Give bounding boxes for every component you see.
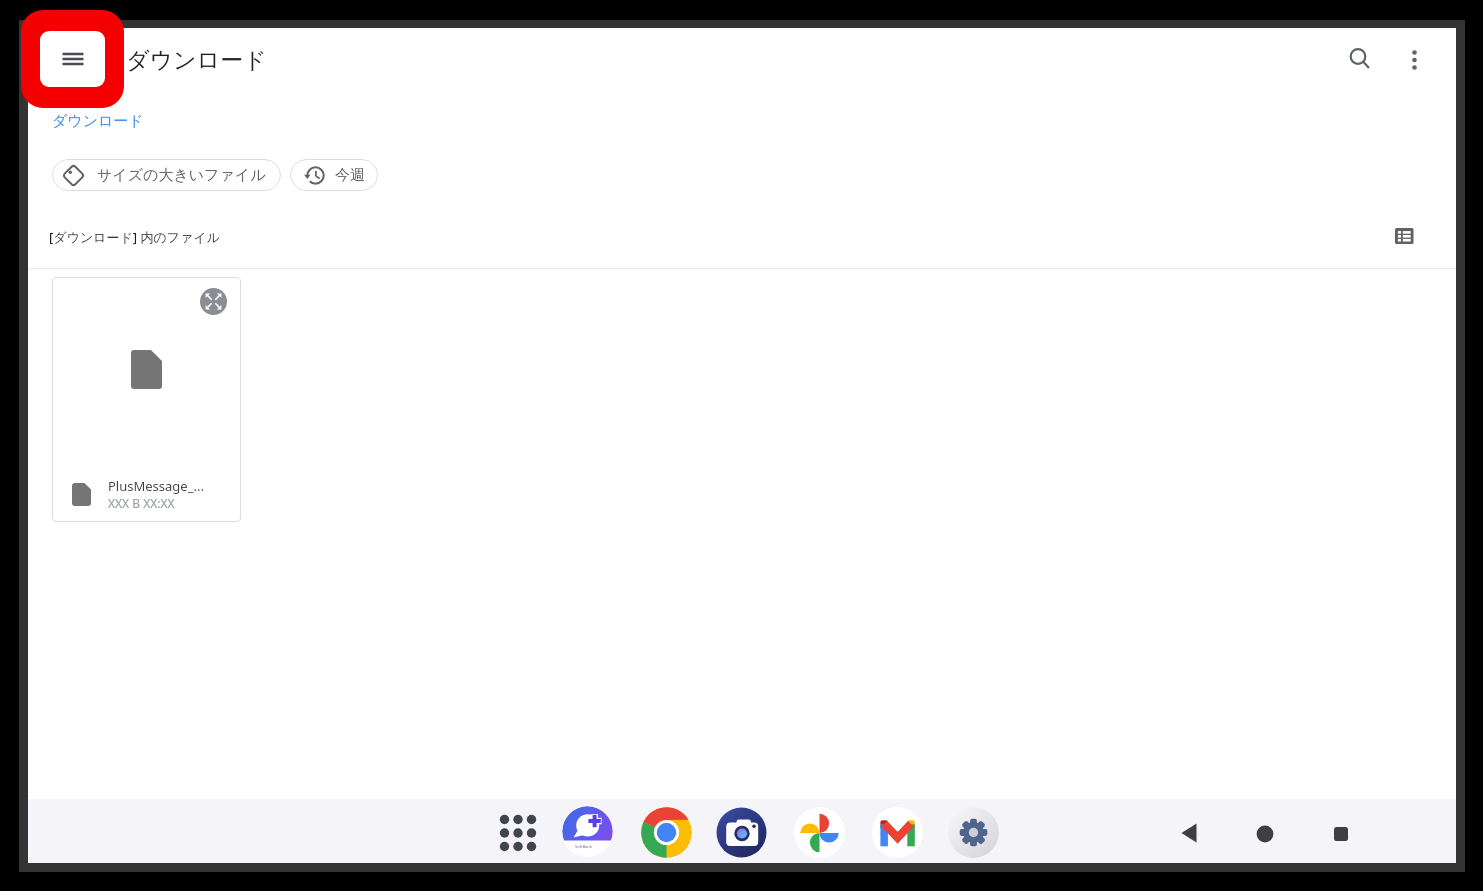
button[interactable]: [948, 807, 999, 858]
staticText: XXX B XX:XX: [108, 495, 175, 511]
button[interactable]: SoftBank: [562, 806, 613, 857]
button[interactable]: [200, 288, 227, 315]
button[interactable]: [716, 807, 767, 858]
button[interactable]: [1241, 809, 1289, 857]
button[interactable]: [1384, 218, 1424, 258]
button[interactable]: [40, 31, 105, 87]
staticText: サイズの大きいファイル: [97, 166, 266, 185]
button[interactable]: [1317, 809, 1365, 857]
button[interactable]: サイズの大きいファイル: [52, 159, 281, 191]
button[interactable]: [1338, 36, 1380, 78]
button[interactable]: [494, 809, 542, 857]
staticText: ダウンロード: [52, 112, 144, 131]
button[interactable]: [872, 807, 923, 858]
button[interactable]: [641, 807, 692, 858]
staticText: SoftBank: [575, 844, 592, 849]
button[interactable]: [1394, 36, 1436, 78]
button[interactable]: [1165, 809, 1213, 857]
button[interactable]: [794, 807, 845, 858]
staticText: [ダウンロード] 内のファイル: [49, 228, 221, 246]
staticText: PlusMessage_...: [108, 477, 204, 495]
button[interactable]: 今週: [290, 159, 378, 191]
staticText: ダウンロード: [126, 46, 267, 75]
staticText: 今週: [335, 166, 365, 185]
button[interactable]: ダウンロード: [52, 109, 212, 134]
button[interactable]: PlusMessage_...: [52, 277, 241, 522]
